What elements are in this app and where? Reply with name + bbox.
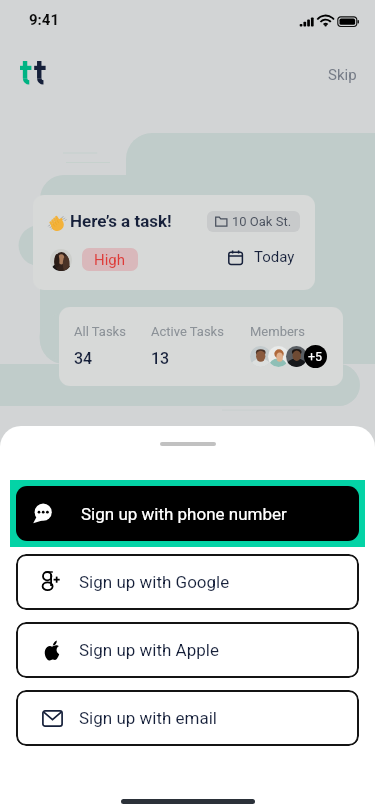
staticText: All Tasks — [74, 324, 126, 339]
button[interactable]: Home — [20, 61, 47, 85]
button[interactable]: Here’s a task! — [33, 195, 315, 290]
staticText: Sign up with Apple — [79, 640, 219, 660]
button[interactable]: Sign up with Google — [16, 554, 359, 610]
staticText: 13 — [151, 349, 170, 368]
staticText: 9:41 — [29, 11, 60, 29]
staticText: 10 Oak St. — [232, 214, 292, 229]
staticText: Members — [250, 324, 305, 339]
button[interactable]: Sign up with Apple — [16, 622, 359, 678]
staticText: Active Tasks — [151, 324, 224, 339]
button[interactable]: Sign up with phone number — [16, 486, 359, 541]
staticText: Here’s a task! — [70, 211, 172, 231]
button[interactable]: Sign up with email — [16, 690, 359, 746]
staticText: Today — [254, 248, 295, 266]
staticText: Sign up with email — [79, 708, 218, 728]
staticText: Skip — [328, 66, 357, 84]
button[interactable]: All Tasks — [59, 307, 343, 386]
staticText: +5 — [308, 349, 323, 364]
staticText: 34 — [74, 349, 93, 368]
staticText: Sign up with Google — [79, 572, 230, 592]
button[interactable]: Skip — [324, 62, 361, 88]
staticText: High — [94, 251, 126, 269]
staticText: Sign up with phone number — [81, 504, 287, 524]
